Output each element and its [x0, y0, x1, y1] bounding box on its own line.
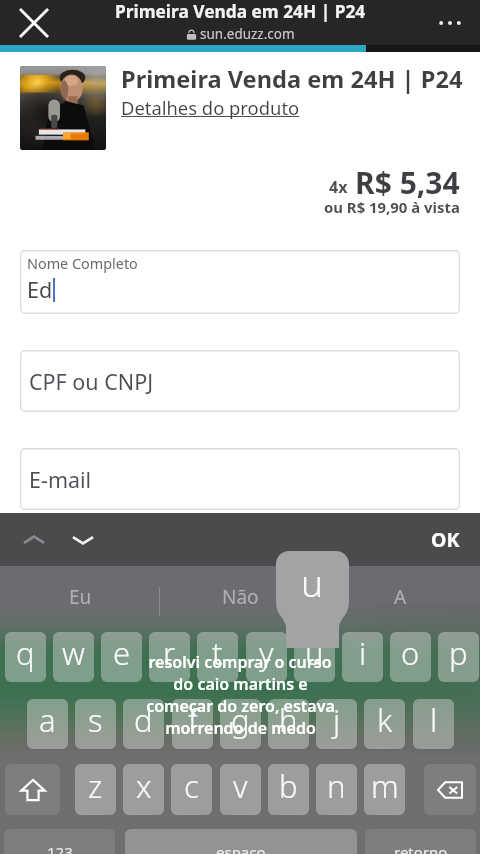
staticText: resolvi comprar o curso — [148, 651, 332, 673]
staticText: q — [16, 632, 35, 674]
staticText: o — [401, 632, 420, 674]
staticText: k — [377, 699, 393, 741]
staticText: CPF ou CNPJ — [29, 367, 154, 396]
button[interactable]: A — [320, 570, 480, 624]
button[interactable]: h — [268, 699, 309, 749]
button[interactable]: Close — [10, 0, 58, 45]
button[interactable]: 123 — [4, 829, 115, 854]
button[interactable]: p — [438, 632, 479, 682]
button[interactable]: c — [171, 764, 212, 815]
staticText: Não — [222, 584, 259, 610]
staticText: y — [259, 632, 274, 674]
staticText: retorno — [394, 842, 448, 854]
button[interactable]: r — [149, 632, 190, 682]
staticText: g — [231, 699, 250, 741]
staticText: começar do zero, estava — [146, 695, 335, 717]
button[interactable]: e — [101, 632, 142, 682]
staticText: f — [188, 699, 198, 741]
button[interactable]: q — [5, 632, 46, 682]
staticText: Detalhes do produto — [121, 95, 300, 120]
button[interactable]: z — [75, 764, 116, 815]
button[interactable]: Eu — [0, 570, 160, 624]
button[interactable]: Não — [160, 570, 320, 624]
staticText: s — [88, 699, 103, 741]
button[interactable]: Shift — [5, 764, 60, 815]
staticText: p — [449, 632, 468, 674]
staticText: m — [371, 765, 399, 807]
staticText: h — [279, 699, 298, 741]
button[interactable]: t — [197, 632, 238, 682]
staticText: u — [305, 632, 324, 674]
staticText: 4x — [329, 176, 348, 198]
staticText: i — [359, 632, 367, 674]
staticText: l — [430, 699, 438, 741]
button[interactable]: y — [246, 632, 287, 682]
button[interactable]: v — [220, 764, 261, 815]
button[interactable]: Next field — [63, 520, 103, 560]
staticText: b — [279, 765, 298, 807]
button[interactable]: More options — [428, 1, 472, 45]
button[interactable]: Backspace — [424, 764, 476, 815]
button[interactable]: u — [294, 632, 335, 682]
button[interactable]: g — [220, 699, 261, 749]
button[interactable]: d — [123, 699, 164, 749]
staticText: sun.eduzz.com — [200, 25, 295, 43]
staticText: E-mail — [29, 465, 92, 494]
button[interactable]: k — [364, 699, 405, 749]
staticText: n — [327, 765, 346, 807]
button[interactable]: s — [75, 699, 116, 749]
staticText: Eu — [69, 584, 92, 610]
staticText: d — [134, 699, 153, 741]
button[interactable]: l — [413, 699, 454, 749]
staticText: A — [394, 584, 407, 610]
staticText: z — [88, 765, 103, 807]
staticText: morrendo de medo — [165, 717, 316, 739]
button[interactable]: i — [342, 632, 383, 682]
button[interactable]: x — [123, 764, 164, 815]
button[interactable]: CPF ou CNPJ — [20, 350, 460, 412]
staticText: ou R$ 19,90 à vista — [324, 197, 460, 217]
staticText: Ed — [27, 275, 53, 304]
staticText: u — [301, 557, 324, 607]
staticText: do caio martins e — [173, 673, 308, 695]
button[interactable]: Detalhes do produto — [121, 95, 300, 120]
staticText: e — [113, 632, 131, 674]
staticText: v — [233, 765, 248, 807]
staticText: x — [136, 765, 152, 807]
button[interactable]: retorno — [365, 829, 476, 854]
button[interactable]: o — [390, 632, 431, 682]
staticText: a — [39, 699, 56, 741]
button[interactable]: a — [27, 699, 68, 749]
button[interactable]: f — [172, 699, 213, 749]
staticText: Primeira Venda em 24H | P24 — [121, 63, 463, 95]
button[interactable]: Nome Completo — [20, 250, 460, 314]
staticText: r — [163, 632, 176, 674]
staticText: t — [212, 632, 223, 674]
staticText: w — [62, 632, 85, 674]
button[interactable]: b — [268, 764, 309, 815]
button[interactable]: j — [316, 699, 357, 749]
button[interactable]: n — [316, 764, 357, 815]
button[interactable]: OK — [431, 526, 460, 553]
staticText: 123 — [47, 842, 73, 854]
staticText: c — [184, 765, 199, 807]
staticText: OK — [431, 526, 460, 553]
staticText: Nome Completo — [27, 254, 138, 274]
button[interactable]: Previous field — [14, 520, 54, 560]
button[interactable]: m — [364, 764, 405, 815]
button[interactable]: E-mail — [20, 448, 460, 510]
button[interactable]: Product image — [20, 66, 106, 150]
button[interactable]: w — [53, 632, 94, 682]
staticText: j — [333, 699, 341, 741]
button[interactable]: espaço — [125, 829, 357, 854]
staticText: espaço — [216, 842, 266, 854]
staticText: Primeira Venda em 24H | P24 — [115, 0, 366, 24]
staticText: R$ 5,34 — [355, 162, 460, 203]
